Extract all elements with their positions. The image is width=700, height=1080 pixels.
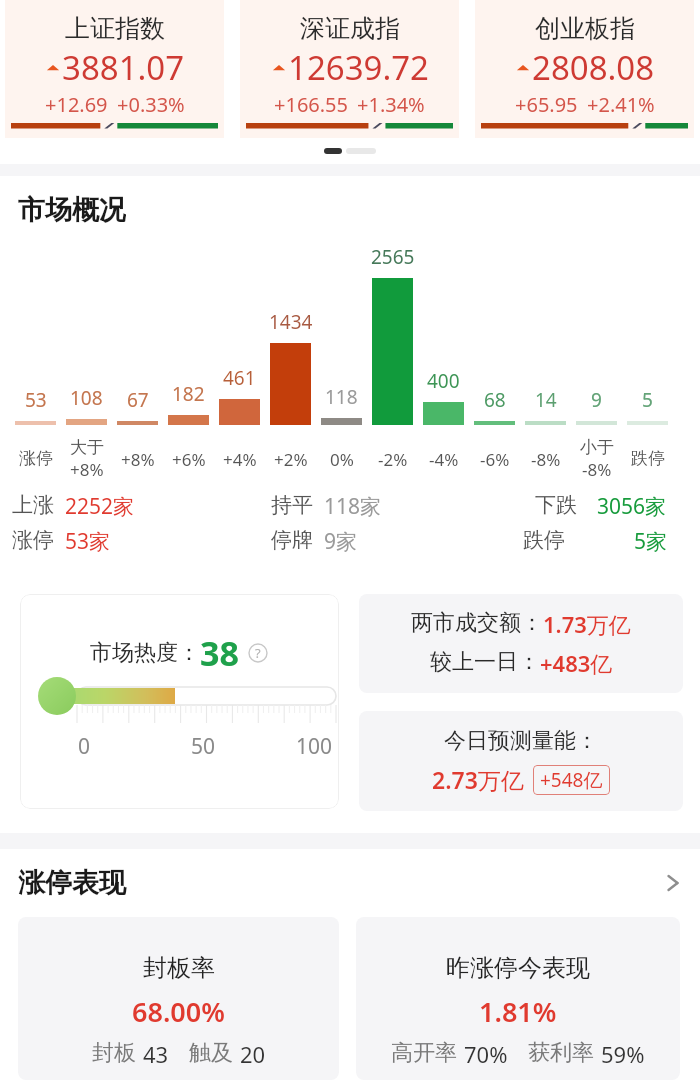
staticText: 3881.07 [62, 45, 185, 90]
button[interactable]: 今日预测量能： [359, 711, 683, 811]
staticText: 108 [70, 385, 103, 411]
staticText: 2.73万亿 [432, 764, 524, 795]
staticText: 大于 [70, 437, 104, 458]
staticText: 3056家 [597, 492, 667, 521]
staticText: +483亿 [540, 648, 613, 678]
staticText: 跌停 [631, 448, 665, 469]
staticText: 上涨 [12, 492, 54, 518]
staticText: 今日预测量能： [444, 727, 598, 755]
staticText: 70% [464, 1039, 508, 1069]
staticText: 59% [601, 1039, 645, 1069]
staticText: -8% [582, 458, 612, 481]
staticText: 68.00% [132, 993, 225, 1030]
staticText: 14 [535, 387, 557, 413]
staticText: 跌停 [523, 527, 565, 553]
staticText: 涨停 [19, 448, 53, 469]
button[interactable]: 涨停表现 [0, 865, 700, 901]
staticText: 43 [143, 1039, 169, 1069]
staticText: 0 [44, 732, 124, 761]
staticText: +6% [172, 448, 206, 471]
staticText: 深证成指 [300, 13, 400, 44]
button[interactable]: 上证指数 [5, 0, 224, 138]
staticText: 较上一日： [430, 648, 540, 676]
staticText: 53家 [65, 527, 111, 556]
staticText: 100 [274, 732, 339, 761]
button[interactable]: 封板率 [18, 917, 339, 1080]
button[interactable]: 创业板指 [475, 0, 694, 138]
staticText: 涨停 [12, 527, 54, 553]
staticText: +4% [223, 448, 257, 471]
other: 更多 [666, 873, 680, 893]
staticText: 0% [330, 448, 354, 471]
staticText: +1.34% [357, 91, 425, 118]
staticText: -8% [531, 448, 561, 471]
staticText: 触及 [189, 1039, 233, 1067]
staticText: 1434 [269, 309, 313, 335]
staticText: 38 [200, 630, 239, 676]
staticText: 461 [223, 365, 256, 391]
staticText: 1.73万亿 [543, 609, 631, 639]
staticText: +8% [70, 458, 104, 481]
staticText: 获利率 [528, 1039, 594, 1067]
staticText: ? [255, 644, 261, 662]
staticText: 2252家 [65, 492, 135, 521]
staticText: 118 [325, 384, 358, 410]
staticText: +2.41% [587, 91, 655, 118]
staticText: -2% [378, 448, 408, 471]
staticText: -6% [480, 448, 510, 471]
staticText: 高开率 [391, 1039, 457, 1067]
button[interactable]: 深证成指 [240, 0, 459, 138]
staticText: 市场概况 [18, 193, 126, 223]
staticText: 涨停表现 [18, 866, 666, 900]
staticText: +65.95 [515, 91, 578, 118]
staticText: 昨涨停今表现 [446, 953, 590, 983]
button[interactable]: 昨涨停今表现 [356, 917, 680, 1080]
button[interactable]: 市场热度： [20, 594, 339, 809]
staticText: 封板率 [143, 953, 215, 983]
staticText: 市场热度： [90, 639, 200, 667]
staticText: 两市成交额： [411, 609, 543, 637]
staticText: 5 [642, 387, 653, 413]
staticText: 9家 [324, 527, 358, 556]
staticText: 2565 [371, 244, 415, 270]
staticText: +548亿 [540, 767, 603, 793]
staticText: +8% [121, 448, 155, 471]
staticText: 9 [591, 387, 602, 413]
staticText: 持平 [271, 492, 313, 518]
staticText: 68 [484, 387, 506, 413]
staticText: 小于 [580, 437, 614, 458]
staticText: 53 [25, 387, 47, 413]
staticText: +166.55 [274, 91, 348, 118]
staticText: 400 [427, 368, 460, 394]
staticText: 封板 [92, 1039, 136, 1067]
staticText: 上证指数 [65, 13, 165, 44]
staticText: +12.69 [45, 91, 108, 118]
staticText: 67 [127, 387, 149, 413]
staticText: +0.33% [117, 91, 185, 118]
staticText: 1.81% [479, 993, 557, 1030]
staticText: 20 [240, 1039, 266, 1069]
staticText: 5家 [585, 527, 667, 556]
staticText: 下跌 [535, 492, 577, 518]
staticText: 2808.08 [532, 45, 655, 90]
staticText: 182 [172, 381, 205, 407]
staticText: 50 [163, 732, 243, 761]
staticText: 停牌 [271, 527, 313, 553]
staticText: 创业板指 [535, 13, 635, 44]
staticText: +2% [274, 448, 308, 471]
staticText: 12639.72 [288, 45, 429, 90]
staticText: -4% [429, 448, 459, 471]
staticText: 118家 [324, 492, 382, 521]
button[interactable]: 两市成交额： [359, 594, 683, 693]
